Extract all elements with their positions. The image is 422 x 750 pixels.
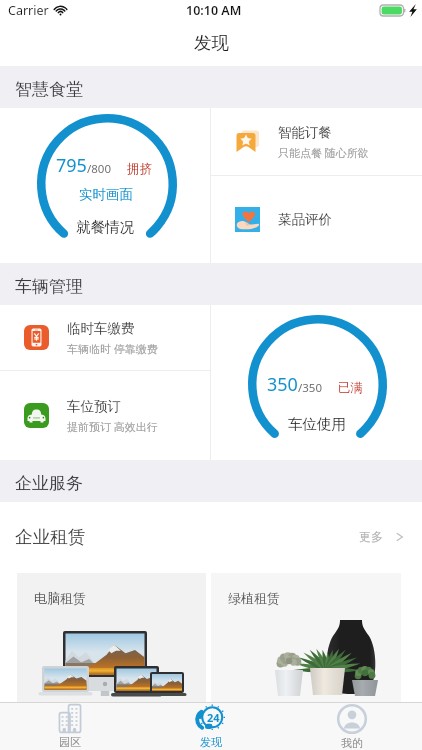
staticText: 园区: [59, 735, 81, 749]
staticText: 车辆管理: [15, 276, 83, 297]
staticText: 24: [207, 710, 220, 725]
staticText: 更多: [359, 529, 383, 544]
staticText: 企业租赁: [15, 526, 85, 548]
staticText: 350: [267, 372, 298, 397]
staticText: 我的: [341, 736, 363, 750]
staticText: 电脑租赁: [34, 590, 86, 606]
staticText: 智能订餐: [278, 124, 332, 141]
staticText: 实时画面: [79, 186, 133, 203]
button[interactable]: 智能订餐: [211, 108, 422, 175]
button[interactable]: 绿植租赁: [211, 573, 401, 702]
button[interactable]: 临时车缴费: [0, 305, 210, 370]
other: 我的: [337, 704, 367, 734]
staticText: 只能点餐 随心所欲: [278, 145, 369, 160]
staticText: 菜品评价: [278, 211, 332, 228]
staticText: 提前预订 高效出行: [67, 419, 158, 434]
button[interactable]: 电脑租赁: [17, 573, 206, 702]
button[interactable]: 350: [211, 305, 350, 460]
button[interactable]: 我的: [281, 703, 422, 750]
staticText: 车辆临时 停靠缴费: [67, 341, 158, 356]
staticText: 发现: [200, 735, 222, 749]
staticText: /800: [87, 161, 112, 177]
button[interactable]: 园区: [0, 703, 140, 750]
button[interactable]: 企业租赁: [0, 502, 422, 571]
staticText: 10:10 AM: [186, 2, 242, 19]
staticText: 绿植租赁: [228, 590, 280, 606]
button[interactable]: 菜品评价: [211, 176, 422, 263]
staticText: /350: [298, 380, 323, 396]
staticText: 就餐情况: [76, 218, 134, 236]
other: 发现: [196, 705, 225, 733]
staticText: 企业服务: [15, 473, 83, 494]
staticText: 临时车缴费: [67, 320, 135, 337]
staticText: 795: [56, 153, 87, 178]
button[interactable]: 车位预订: [0, 371, 210, 460]
staticText: 车位预订: [67, 398, 121, 415]
staticText: Carrier: [8, 2, 49, 19]
staticText: 智慧食堂: [15, 79, 83, 100]
staticText: 发现: [194, 32, 229, 54]
button[interactable]: 发现: [140, 703, 281, 750]
staticText: 拥挤: [127, 161, 152, 177]
staticText: 已满: [338, 380, 363, 396]
other: 园区: [58, 704, 82, 733]
button[interactable]: 795: [0, 108, 210, 263]
staticText: 车位使用: [288, 415, 346, 433]
